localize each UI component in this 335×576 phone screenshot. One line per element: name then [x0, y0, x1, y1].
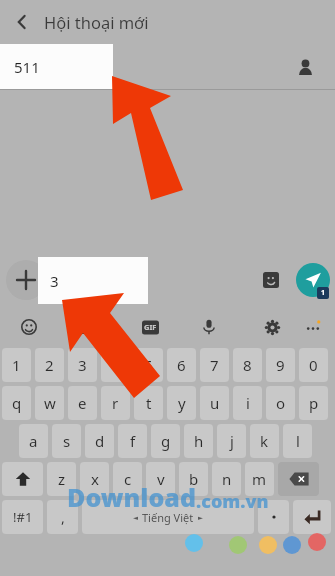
button[interactable]: Settings	[256, 311, 288, 343]
staticText: v	[157, 469, 165, 489]
button[interactable]: m	[245, 462, 274, 496]
button[interactable]: c	[113, 462, 142, 496]
button[interactable]: Voice input	[193, 311, 225, 343]
button[interactable]: e	[68, 386, 97, 420]
staticText: ◄	[133, 514, 138, 522]
staticText: Hội thoại mới	[44, 11, 149, 33]
button[interactable]: Clipboard	[69, 311, 101, 343]
button[interactable]: Emoji	[13, 311, 45, 343]
button[interactable]: a	[19, 424, 48, 458]
button[interactable]: Key	[47, 500, 78, 534]
button[interactable]: 3	[68, 348, 97, 382]
button[interactable]: 511	[0, 44, 113, 90]
button[interactable]: 7	[200, 348, 229, 382]
staticText: g	[161, 431, 171, 451]
button[interactable]: n	[212, 462, 241, 496]
staticText: e	[78, 393, 87, 413]
button[interactable]: s	[52, 424, 81, 458]
button[interactable]: More options	[297, 311, 329, 343]
button[interactable]: d	[85, 424, 114, 458]
button[interactable]: b	[179, 462, 208, 496]
button[interactable]: 5	[134, 348, 163, 382]
staticText: j	[230, 431, 234, 451]
button[interactable]: t	[134, 386, 163, 420]
staticText: 3	[50, 271, 59, 291]
staticText: 2	[45, 355, 54, 375]
button[interactable]: Space, Tiếng Việt	[82, 500, 254, 534]
staticText: f	[130, 431, 136, 451]
button[interactable]: 2	[35, 348, 64, 382]
staticText: p	[309, 393, 319, 413]
staticText: z	[58, 469, 66, 489]
button[interactable]: 6	[167, 348, 196, 382]
staticText: y	[178, 393, 186, 413]
staticText: b	[189, 469, 199, 489]
button[interactable]: Key	[258, 500, 289, 534]
button[interactable]: o	[266, 386, 295, 420]
staticText: t	[146, 393, 152, 413]
button[interactable]: Stickers	[255, 264, 287, 296]
button[interactable]: g	[151, 424, 180, 458]
button[interactable]: k	[250, 424, 279, 458]
button[interactable]: j	[217, 424, 246, 458]
button[interactable]: x	[80, 462, 109, 496]
staticText: n	[222, 469, 232, 489]
button[interactable]: Contacts	[285, 47, 325, 87]
button[interactable]: y	[167, 386, 196, 420]
button[interactable]: Key	[278, 462, 319, 496]
staticText: ,	[61, 508, 65, 527]
button[interactable]: 4	[101, 348, 130, 382]
button[interactable]: 1	[2, 348, 31, 382]
staticText: GIF	[144, 322, 157, 332]
staticText: .com.vn	[196, 489, 269, 514]
button[interactable]: Key	[2, 462, 43, 496]
staticText: w	[44, 393, 56, 413]
staticText: u	[210, 393, 220, 413]
staticText: 3	[78, 355, 87, 375]
staticText: 7	[210, 355, 219, 375]
button[interactable]: 3	[38, 257, 148, 304]
staticText: ►	[198, 514, 203, 522]
button[interactable]: u	[200, 386, 229, 420]
button[interactable]: r	[101, 386, 130, 420]
staticText: q	[12, 393, 22, 413]
staticText: m	[252, 469, 267, 489]
staticText: a	[29, 431, 38, 451]
button[interactable]: l	[283, 424, 312, 458]
button[interactable]: Send	[296, 263, 330, 297]
staticText: i	[246, 393, 250, 413]
staticText: 9	[276, 355, 285, 375]
staticText: d	[95, 431, 105, 451]
button[interactable]: v	[146, 462, 175, 496]
staticText: Tiếng Việt	[142, 510, 194, 525]
staticText: s	[63, 431, 71, 451]
staticText: !#1	[13, 508, 33, 526]
button[interactable]: h	[184, 424, 213, 458]
button[interactable]: p	[299, 386, 328, 420]
staticText: c	[124, 469, 132, 489]
staticText: x	[91, 469, 99, 489]
button[interactable]: f	[118, 424, 147, 458]
button[interactable]: Key	[2, 500, 43, 534]
button[interactable]: i	[233, 386, 262, 420]
button[interactable]: GIF	[134, 311, 166, 343]
button[interactable]: Back	[0, 0, 44, 44]
staticText: h	[194, 431, 204, 451]
staticText: 6	[177, 355, 186, 375]
staticText: 1	[12, 355, 21, 375]
button[interactable]: w	[35, 386, 64, 420]
staticText: 511	[14, 57, 40, 77]
staticText: 8	[243, 355, 252, 375]
staticText: Download	[67, 480, 196, 514]
button[interactable]: 8	[233, 348, 262, 382]
button[interactable]: Key	[293, 500, 331, 534]
staticText: r	[112, 393, 119, 413]
staticText: l	[296, 431, 300, 451]
staticText: k	[260, 431, 269, 451]
button[interactable]: 9	[266, 348, 295, 382]
staticText: 0	[309, 355, 318, 375]
button[interactable]: q	[2, 386, 31, 420]
button[interactable]: 0	[299, 348, 328, 382]
button[interactable]: z	[47, 462, 76, 496]
button[interactable]: Add attachment	[6, 260, 46, 300]
